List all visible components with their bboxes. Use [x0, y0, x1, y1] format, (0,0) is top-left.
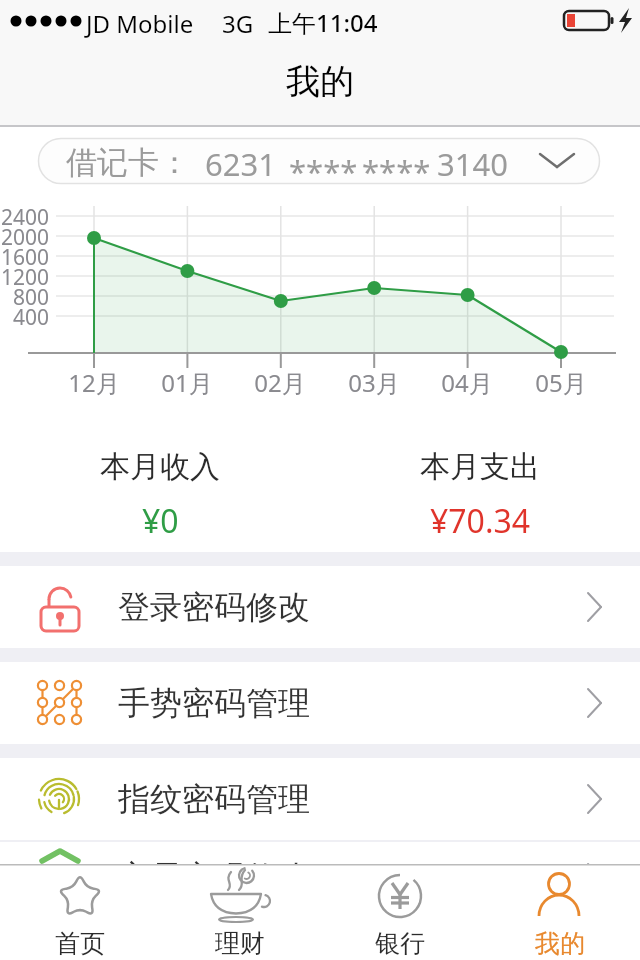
staticText: 02月	[240, 366, 320, 399]
staticText: 本月支出	[420, 448, 540, 486]
staticText: 05月	[521, 366, 601, 399]
staticText: JD Mobile	[86, 7, 194, 40]
staticText: ****	[289, 150, 358, 192]
button[interactable]: 我的	[480, 864, 640, 960]
staticText: 我的	[535, 928, 585, 959]
staticText: 03月	[334, 366, 414, 399]
button[interactable]: 交易密码修改	[0, 842, 640, 872]
staticText: 3G	[222, 7, 254, 40]
button[interactable]: 借记卡：	[38, 138, 600, 184]
staticText: 银行	[375, 928, 425, 959]
staticText: ¥70.34	[430, 499, 531, 543]
button[interactable]: 银行	[320, 864, 480, 960]
staticText: 1200	[0, 263, 49, 292]
staticText: ****	[362, 150, 431, 192]
staticText: 我的	[286, 60, 354, 103]
staticText: 指纹密码管理	[118, 779, 310, 819]
button[interactable]: 指纹密码管理	[0, 758, 640, 840]
staticText: ¥0	[142, 499, 179, 543]
staticText: 800	[0, 283, 49, 312]
staticText: 登录密码修改	[118, 587, 310, 627]
staticText: 首页	[55, 928, 105, 959]
staticText: 2000	[0, 223, 49, 252]
staticText: 400	[0, 303, 49, 332]
button[interactable]: 首页	[0, 864, 160, 960]
staticText: 借记卡：	[66, 143, 190, 182]
button[interactable]: 理财	[160, 864, 320, 960]
button[interactable]: 手势密码管理	[0, 662, 640, 744]
staticText: 交易密码修改	[118, 857, 310, 887]
staticText: 1600	[0, 243, 49, 272]
button[interactable]: 登录密码修改	[0, 566, 640, 648]
staticText: 01月	[147, 366, 227, 399]
staticText: 手势密码管理	[118, 683, 310, 723]
staticText: 6231	[205, 143, 276, 185]
staticText: 2400	[0, 203, 49, 232]
staticText: 12月	[54, 366, 134, 399]
staticText: 3140	[437, 143, 508, 185]
staticText: 04月	[427, 366, 507, 399]
staticText: 理财	[215, 928, 265, 959]
staticText: 上午11:04	[268, 6, 378, 39]
staticText: 本月收入	[100, 448, 220, 486]
